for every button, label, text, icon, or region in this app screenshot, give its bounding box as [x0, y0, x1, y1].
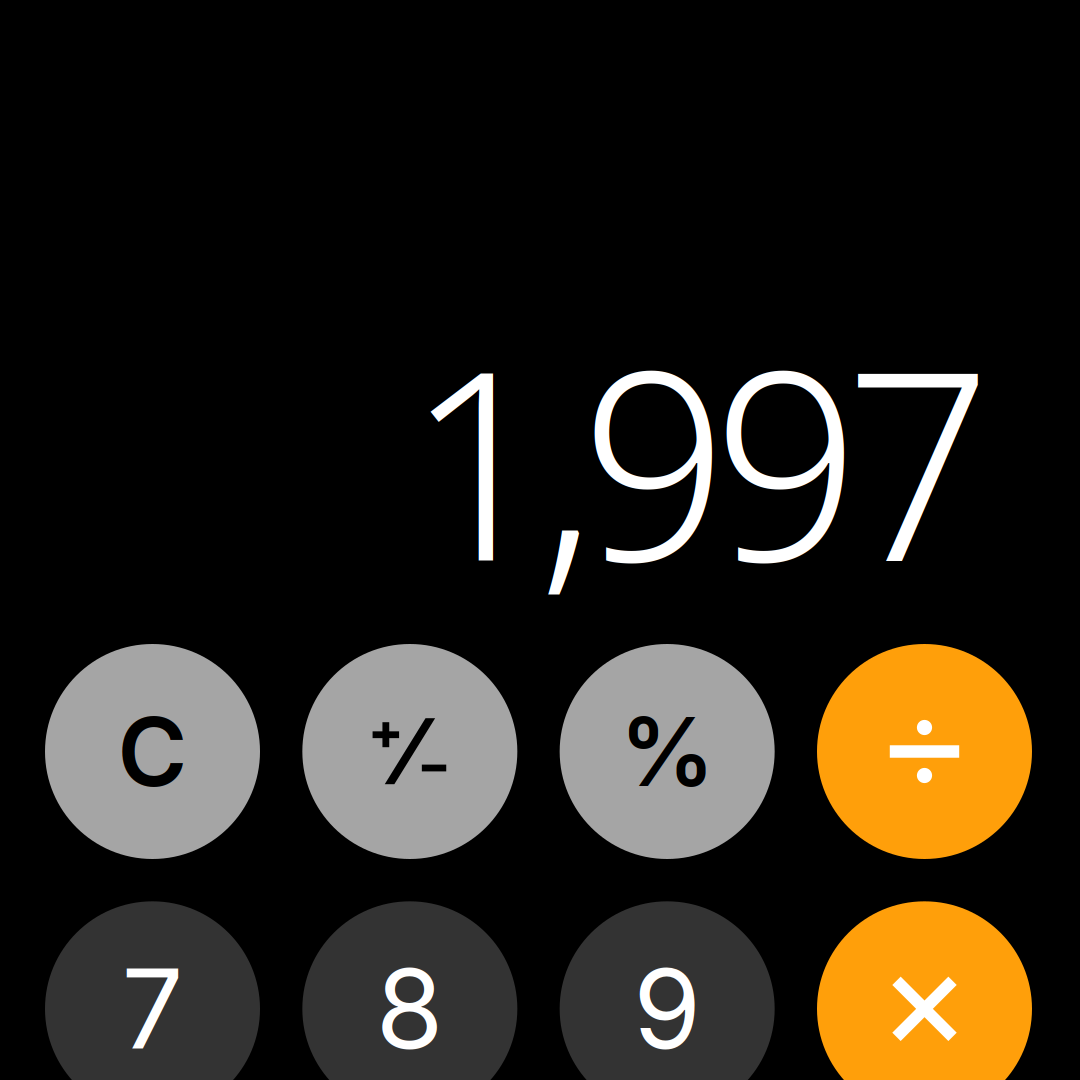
button[interactable]: 9 [560, 901, 775, 1080]
staticText: 8 [376, 943, 444, 1075]
button[interactable]: Plus minus [302, 644, 517, 859]
button[interactable]: Clear [45, 644, 260, 859]
staticText: 7 [121, 943, 183, 1075]
staticText: % [620, 694, 715, 809]
button[interactable]: 7 [45, 901, 260, 1080]
button[interactable]: Divide [817, 644, 1032, 859]
staticText: 1,997 [406, 281, 992, 637]
staticText: C [117, 694, 187, 809]
staticText: 9 [633, 943, 701, 1075]
button[interactable]: Percent [560, 644, 775, 859]
button[interactable]: 8 [302, 901, 517, 1080]
button[interactable]: Multiply [817, 901, 1032, 1080]
